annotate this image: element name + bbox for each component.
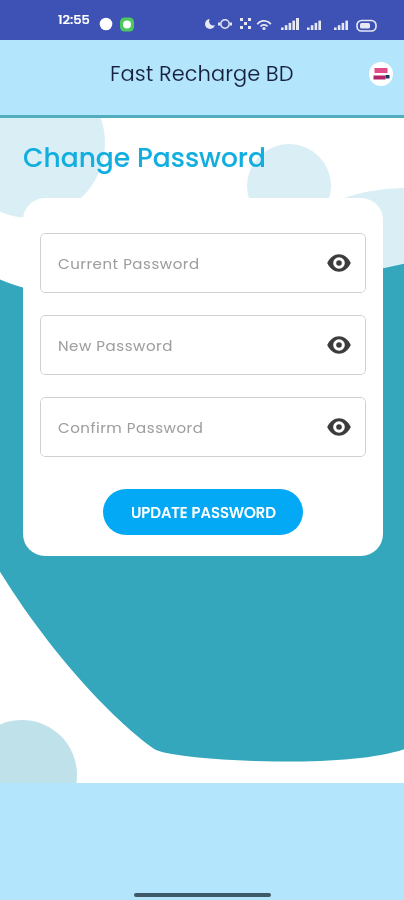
button[interactable]: Show password xyxy=(326,332,352,358)
button[interactable]: Profile xyxy=(369,62,393,86)
button[interactable]: UPDATE PASSWORD xyxy=(103,489,303,535)
button[interactable]: New Password xyxy=(40,315,366,375)
button[interactable]: Show password xyxy=(326,414,352,440)
button[interactable]: Current Password xyxy=(40,233,366,293)
staticText: UPDATE PASSWORD xyxy=(131,502,276,523)
staticText: 12:55 xyxy=(58,10,90,28)
staticText: New Password xyxy=(58,335,173,356)
staticText: Confirm Password xyxy=(58,417,204,438)
staticText: Current Password xyxy=(58,253,200,274)
button[interactable]: Show password xyxy=(326,250,352,276)
staticText: Fast Recharge BD xyxy=(110,59,294,88)
staticText: Change Password xyxy=(23,139,267,176)
button[interactable]: Confirm Password xyxy=(40,397,366,457)
